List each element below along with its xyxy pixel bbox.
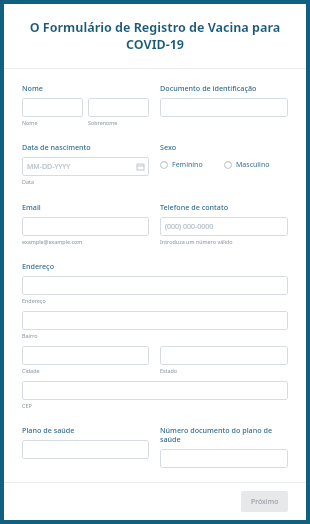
staticText: Número documento do plano de saúde	[160, 425, 288, 444]
staticText: Próximo	[251, 497, 279, 507]
staticText: Documento de identificação	[160, 83, 257, 93]
staticText: Email	[22, 202, 41, 212]
staticText: example@example.com	[22, 238, 83, 245]
staticText: MM-DD-YYYY	[27, 162, 137, 172]
staticText: Estado	[160, 367, 178, 374]
staticText: Masculino	[236, 160, 270, 170]
staticText: Data de nascimento	[22, 142, 91, 152]
button[interactable]: Masculino	[224, 160, 270, 170]
staticText: Telefone de contato	[160, 202, 229, 212]
staticText: (000) 000-0000	[165, 222, 283, 232]
staticText: Nome	[22, 119, 38, 126]
staticText: Bairro	[22, 332, 38, 339]
button[interactable]	[88, 98, 149, 117]
staticText: Introduza um número válido	[160, 238, 233, 245]
button[interactable]: MM-DD-YYYY	[22, 157, 149, 176]
staticText: Plano de saúde	[22, 425, 75, 435]
button[interactable]: (000) 000-0000	[160, 217, 288, 236]
button[interactable]	[160, 449, 288, 468]
button[interactable]: Feminino	[160, 160, 203, 170]
button[interactable]	[22, 440, 149, 459]
button[interactable]	[22, 276, 288, 295]
staticText: Cidade	[22, 367, 40, 374]
button[interactable]: Próximo	[241, 491, 288, 512]
button[interactable]	[22, 217, 149, 236]
button[interactable]	[22, 346, 149, 365]
button[interactable]	[22, 311, 288, 330]
button[interactable]	[160, 98, 288, 117]
staticText: Data	[22, 178, 34, 185]
staticText: Endereço	[22, 297, 46, 304]
button[interactable]	[160, 346, 288, 365]
staticText: CEP	[22, 402, 32, 409]
staticText: Nome	[22, 83, 43, 93]
button[interactable]	[22, 381, 288, 400]
staticText: O Formulário de Registro de Vacina para …	[22, 19, 288, 53]
staticText: Sobrenome	[88, 119, 118, 126]
staticText: Feminino	[172, 160, 203, 170]
button[interactable]	[22, 98, 83, 117]
staticText: Endereço	[22, 261, 55, 271]
staticText: Sexo	[160, 142, 177, 152]
